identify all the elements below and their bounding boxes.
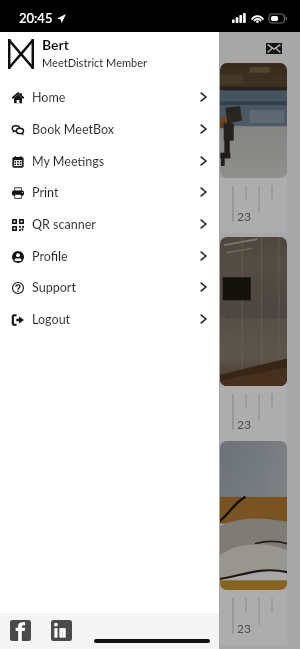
button[interactable]: Book MeetBox — [0, 113, 219, 145]
button[interactable]: 23 — [220, 441, 287, 645]
staticText: Profile — [32, 249, 68, 264]
button[interactable]: Profile — [0, 240, 219, 272]
staticText: Bert — [42, 36, 70, 53]
staticText: Support — [32, 280, 76, 295]
staticText: Book MeetBox — [32, 122, 115, 137]
button[interactable]: Messages — [266, 43, 282, 54]
staticText: QR scanner — [32, 217, 96, 232]
staticText: 23 — [237, 417, 251, 431]
button[interactable]: Facebook — [10, 620, 31, 641]
staticText: 23 — [237, 209, 251, 223]
button[interactable]: 23 — [220, 237, 287, 441]
staticText: Print — [32, 185, 59, 200]
staticText: 20:45 — [19, 10, 53, 26]
staticText: MeetDistrict Member — [42, 56, 148, 69]
button[interactable]: Logout — [0, 303, 219, 335]
button[interactable]: 23 — [220, 63, 287, 233]
staticText: 23 — [237, 621, 251, 635]
button[interactable]: Home — [0, 81, 219, 113]
button[interactable]: Print — [0, 176, 219, 208]
button[interactable]: QR scanner — [0, 208, 219, 240]
button[interactable]: Support — [0, 271, 219, 303]
staticText: My Meetings — [32, 154, 105, 169]
button[interactable]: LinkedIn — [51, 620, 72, 641]
staticText: Home — [32, 90, 66, 105]
button[interactable]: My Meetings — [0, 145, 219, 177]
staticText: Logout — [32, 312, 71, 327]
